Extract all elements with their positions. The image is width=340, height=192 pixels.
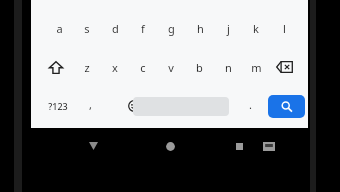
staticText: b xyxy=(196,60,203,75)
staticText: f xyxy=(141,21,145,36)
button[interactable]: Search xyxy=(268,95,305,118)
button[interactable]: Shift xyxy=(44,56,68,78)
staticText: g xyxy=(168,21,175,36)
staticText: z xyxy=(84,60,90,75)
button[interactable]: l xyxy=(270,17,298,39)
staticText: s xyxy=(84,21,90,36)
button[interactable]: k xyxy=(242,17,270,39)
button[interactable]: n xyxy=(214,56,242,78)
staticText: ?123 xyxy=(48,100,68,112)
staticText: . xyxy=(249,97,252,112)
button[interactable]: d xyxy=(101,17,129,39)
button[interactable]: b xyxy=(185,56,213,78)
staticText: k xyxy=(253,21,259,36)
button[interactable]: Emoji xyxy=(123,95,145,117)
button[interactable]: Backspace xyxy=(271,56,297,78)
button[interactable]: z xyxy=(73,56,101,78)
staticText: h xyxy=(197,21,204,36)
button[interactable]: s xyxy=(73,17,101,39)
staticText: v xyxy=(168,60,174,75)
staticText: j xyxy=(227,21,230,36)
button[interactable]: g xyxy=(157,17,185,39)
button[interactable]: f xyxy=(129,17,157,39)
button[interactable]: v xyxy=(157,56,185,78)
button[interactable]: m xyxy=(242,56,270,78)
button[interactable]: j xyxy=(214,17,242,39)
button[interactable]: . xyxy=(236,93,264,115)
button[interactable]: a xyxy=(45,17,73,39)
button[interactable]: h xyxy=(186,17,214,39)
staticText: a xyxy=(56,21,63,36)
staticText: n xyxy=(225,60,232,75)
staticText: c xyxy=(140,60,146,75)
staticText: l xyxy=(283,21,286,36)
staticText: d xyxy=(112,21,119,36)
staticText: x xyxy=(112,60,118,75)
staticText: m xyxy=(251,60,262,75)
button[interactable]: Recent apps xyxy=(229,136,249,156)
button[interactable]: Change keyboard xyxy=(259,136,279,156)
button[interactable]: Hide keyboard xyxy=(82,135,104,157)
button[interactable]: , xyxy=(76,93,104,115)
button[interactable]: Home xyxy=(158,134,182,158)
staticText: , xyxy=(89,97,92,112)
button[interactable]: c xyxy=(129,56,157,78)
button[interactable]: x xyxy=(101,56,129,78)
button[interactable]: ?123 xyxy=(44,95,72,117)
